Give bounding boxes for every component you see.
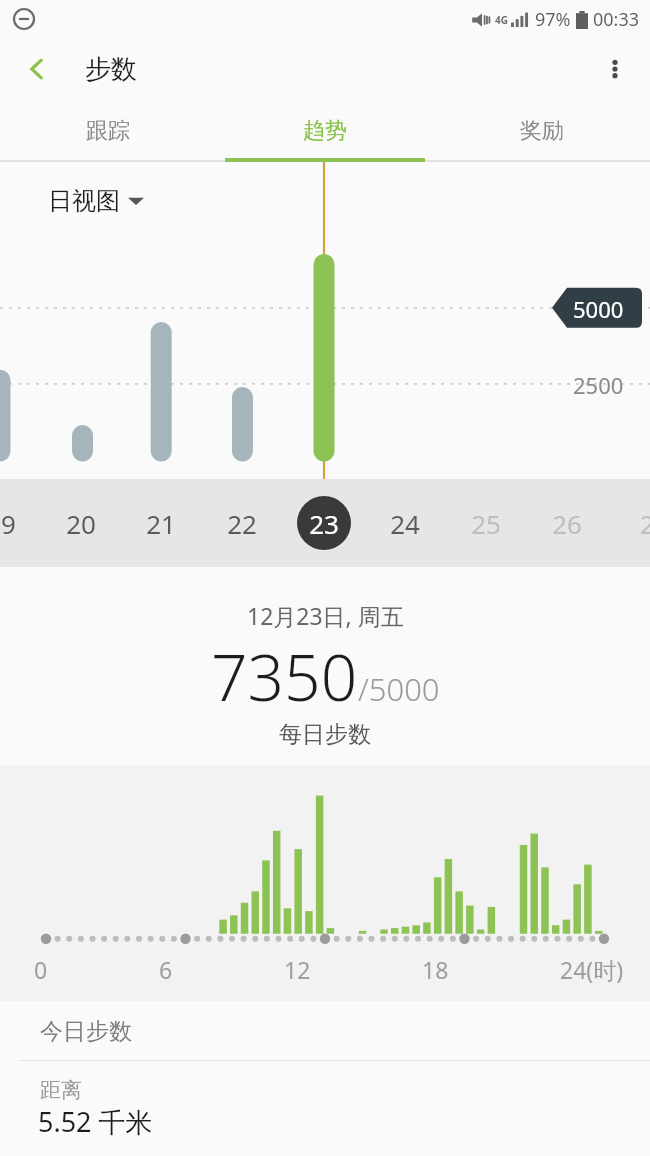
button[interactable]: 跟踪 [0,100,216,162]
button[interactable]: 22 [214,495,270,551]
staticText: 26 [552,506,582,541]
staticText: 5.52 千米 [38,1103,153,1140]
button[interactable]: 9 [0,495,36,551]
staticText: 跟踪 [86,117,130,145]
button[interactable]: 2 [619,495,650,551]
button[interactable]: 趋势 [216,100,433,162]
staticText: 0 [34,954,48,985]
staticText: 24(时) [560,954,624,985]
staticText: 日视图 [48,186,120,216]
staticText: 每日步数 [279,720,371,749]
button[interactable]: 23 [296,495,352,551]
button[interactable]: 今日步数 [0,1001,650,1156]
staticText: 2500 [573,370,624,400]
staticText: 12 [284,954,311,985]
button[interactable]: Back [12,44,62,94]
staticText: 距离 [40,1077,82,1103]
staticText: 今日步数 [40,1017,132,1046]
staticText: 趋势 [303,117,347,145]
staticText: 24 [390,506,420,541]
staticText: 奖励 [520,117,564,145]
staticText: 21 [146,506,176,541]
button[interactable]: 日视图 [48,186,144,216]
staticText: 7350 [211,633,358,720]
staticText: 23 [309,506,339,541]
staticText: 2 [640,506,650,541]
staticText: 步数 [85,53,137,86]
staticText: 18 [422,954,449,985]
staticText: 97% [535,7,571,32]
button[interactable]: 21 [133,495,189,551]
button[interactable]: 25 [458,495,514,551]
staticText: 22 [227,506,257,541]
staticText: 5000 [573,294,624,324]
button[interactable]: 26 [539,495,595,551]
staticText: 6 [159,954,173,985]
staticText: 25 [471,506,501,541]
staticText: 12月23日, 周五 [247,600,404,631]
button[interactable]: 24 [377,495,433,551]
button[interactable]: 20 [53,495,109,551]
staticText: 20 [66,506,96,541]
staticText: 9 [1,506,16,541]
staticText: 00:33 [593,7,640,32]
button[interactable]: 奖励 [433,100,650,162]
staticText: 4G [495,13,508,27]
button[interactable]: More options [590,44,640,94]
staticText: /5000 [358,668,440,710]
